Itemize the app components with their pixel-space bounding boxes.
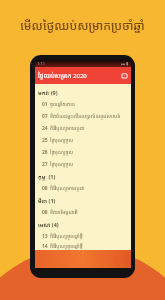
staticText: មេសា (4) [38, 221, 59, 228]
button[interactable]: 08 [35, 206, 131, 218]
staticText: 13 [42, 233, 48, 240]
staticText: 26 [42, 149, 48, 156]
staticText: 25 [42, 137, 48, 144]
button[interactable]: 08 [35, 182, 131, 194]
staticText: ថ្ងៃបុណ្យចូល [50, 137, 74, 144]
staticText: 08 [42, 209, 48, 216]
staticText: ពិធីបុណ្យចូលឆ្នាំថ្មី [50, 233, 83, 240]
staticText: 08 [42, 185, 48, 192]
staticText: ពិធីបុណ្យចូលឆ្នាំថ្មី [50, 243, 83, 250]
staticText: មករា (9) [38, 89, 58, 96]
staticText: មីនា (1) [38, 197, 56, 204]
staticText: 27 [42, 161, 48, 168]
button[interactable]: 24 [35, 122, 131, 134]
button[interactable]: Calendar [120, 71, 129, 80]
staticText: ទិវានារីអន្តរជាតិ [50, 209, 78, 216]
staticText: ពិធីបុណ្យមាឃបូជា [50, 185, 85, 192]
staticText: 14 [42, 243, 48, 250]
button[interactable]: 13 [35, 230, 131, 242]
staticText: 24 [42, 125, 48, 132]
button[interactable]: 27 [35, 158, 131, 170]
staticText: 07 [42, 113, 48, 120]
button[interactable]: 26 [35, 146, 131, 158]
staticText: 01 [42, 101, 48, 108]
staticText: ទិវាជ័យជម្នះលើរបបប្រល័យពូជសាសន៍ [50, 113, 121, 120]
staticText: ថ្ងៃឈប់សម្រាក 2020 [38, 72, 87, 80]
staticText: ចូលឆ្នាំសកល [50, 101, 75, 108]
staticText: ▴▴ ▮ [121, 61, 129, 66]
button[interactable]: 25 [35, 134, 131, 146]
staticText: កុម្ភៈ (1) [38, 173, 56, 180]
staticText: 1:11 [37, 61, 45, 66]
button[interactable]: 14 [35, 242, 131, 250]
staticText: ថ្ងៃបុណ្យចូល [50, 149, 74, 156]
staticText: ថ្ងៃបុណ្យចូល [50, 161, 74, 168]
staticText: ពិធីបុណ្យមាឃបូជា [50, 125, 85, 132]
staticText: មើលថ្ងៃឈប់សម្រាកប្រចាំឆ្នាំ [0, 17, 165, 33]
button[interactable]: 01 [35, 98, 131, 110]
button[interactable]: 07 [35, 110, 131, 122]
